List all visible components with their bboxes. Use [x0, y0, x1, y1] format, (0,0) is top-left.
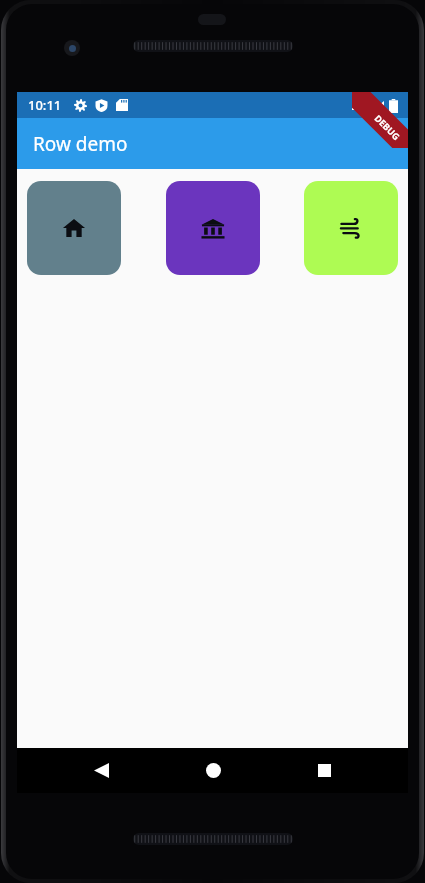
button[interactable]: Wind	[304, 181, 398, 275]
staticText: 10:11	[28, 96, 62, 114]
staticText: DEBUG	[372, 112, 403, 142]
button[interactable]: Back	[73, 748, 129, 793]
staticText: Row demo	[33, 131, 128, 157]
button[interactable]: Recent apps	[296, 748, 352, 793]
button[interactable]: Home	[27, 181, 121, 275]
staticText: LTE	[351, 98, 369, 113]
button[interactable]: Account balance	[166, 181, 260, 275]
button[interactable]: Home	[185, 748, 241, 793]
